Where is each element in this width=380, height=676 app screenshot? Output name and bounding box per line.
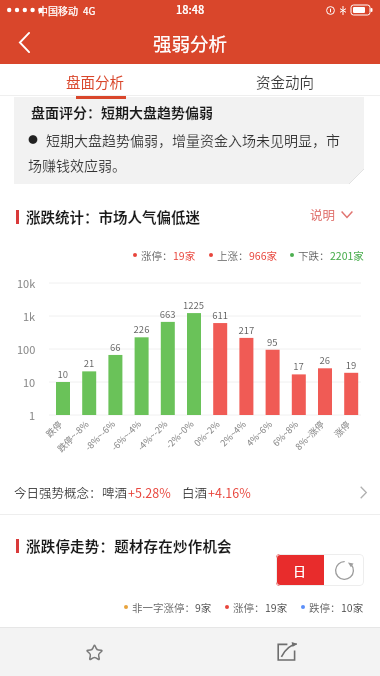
button[interactable]: Share — [267, 628, 307, 676]
staticText: 强弱分析 — [153, 30, 228, 57]
staticText: 非一字涨停： — [132, 600, 195, 614]
staticText: 下跌： — [298, 248, 330, 262]
button[interactable]: 日 — [276, 554, 324, 586]
staticText: 今日强势概念： — [14, 483, 102, 501]
staticText: 中国移动 — [38, 3, 78, 17]
staticText: 9家 — [195, 600, 212, 614]
button[interactable]: Back — [4, 22, 44, 62]
staticText: +4.16% — [208, 483, 251, 501]
staticText: 966家 — [249, 248, 277, 262]
staticText: 短期大盘趋势偏弱，增量资金入场未见明显，市 — [46, 130, 340, 150]
staticText: 涨跌统计：市场人气偏低迷 — [26, 206, 200, 227]
button[interactable]: Refresh — [324, 554, 364, 586]
button[interactable]: 盘面分析 — [0, 64, 190, 96]
button[interactable]: 说明 — [310, 204, 364, 224]
staticText: 10家 — [341, 600, 364, 614]
staticText: 19家 — [265, 600, 288, 614]
staticText: 涨跌停走势：题材存在炒作机会 — [26, 535, 232, 556]
button[interactable]: Favorite — [74, 628, 114, 676]
button[interactable]: 资金动向 — [190, 64, 380, 96]
staticText: 上涨： — [217, 248, 249, 262]
staticText: 跌停： — [309, 600, 341, 614]
staticText: 说明 — [310, 205, 336, 223]
staticText: 场赚钱效应弱。 — [28, 155, 126, 175]
staticText: 涨停： — [141, 248, 173, 262]
staticText: +5.28% — [128, 483, 171, 501]
staticText: 2201家 — [330, 248, 364, 262]
staticText: 资金动向 — [256, 71, 314, 92]
staticText: 4G — [83, 3, 96, 17]
staticText: 盘面分析 — [66, 71, 124, 92]
staticText: 18:48 — [176, 1, 205, 17]
staticText: ● — [28, 132, 38, 146]
staticText: 白酒 — [182, 483, 208, 501]
staticText: 啤酒 — [102, 483, 128, 501]
staticText: 盘面评分：短期大盘趋势偏弱 — [31, 102, 213, 122]
staticText: 涨停： — [233, 600, 265, 614]
staticText: 19家 — [173, 248, 196, 262]
button[interactable]: 今日强势概念： — [14, 474, 367, 510]
staticText: 日 — [293, 561, 307, 580]
